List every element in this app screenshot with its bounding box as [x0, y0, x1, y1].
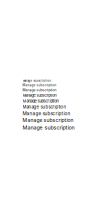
staticText: Manage subscription [22, 104, 66, 110]
staticText: Manage subscription [22, 93, 56, 97]
staticText: Manage subscription [22, 79, 51, 82]
staticText: Manage subscription [22, 124, 74, 131]
staticText: Manage subscription [22, 111, 70, 116]
staticText: Manage subscription [22, 117, 73, 123]
staticText: Manage subscription [22, 88, 56, 92]
staticText: Manage subscription [22, 98, 58, 103]
staticText: Manage subscription [22, 83, 56, 87]
